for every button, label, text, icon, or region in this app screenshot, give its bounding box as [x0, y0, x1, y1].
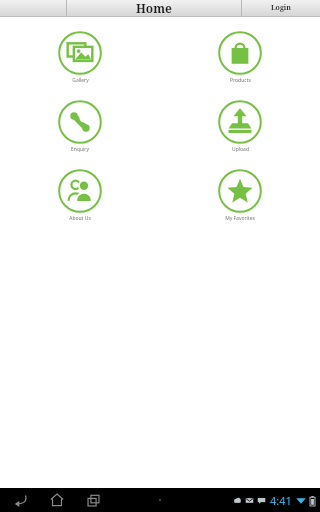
staticText: Enquiry	[71, 146, 89, 153]
button[interactable]: Enquiry	[52, 99, 108, 154]
button[interactable]: Gallery	[52, 30, 108, 85]
button[interactable]: Back	[6, 488, 36, 512]
staticText: Login	[271, 3, 291, 13]
button[interactable]: Upload	[212, 99, 268, 154]
staticText: Gallery	[72, 77, 89, 84]
button[interactable]: Login	[242, 0, 320, 16]
staticText: About Us	[69, 215, 91, 222]
staticText: My Favorites	[225, 215, 255, 222]
button[interactable]: Products	[212, 30, 268, 85]
staticText: Products	[230, 77, 251, 84]
staticText: Home	[136, 0, 172, 16]
button[interactable]: My Favorites	[212, 168, 268, 223]
button[interactable]: Home	[42, 488, 72, 512]
button[interactable]: About Us	[52, 168, 108, 223]
button[interactable]: Home	[67, 0, 241, 16]
staticText: Upload	[232, 146, 249, 153]
button[interactable]: Recent apps	[78, 488, 108, 512]
staticText: 4:41	[270, 493, 292, 508]
button[interactable]: Status	[233, 493, 315, 508]
